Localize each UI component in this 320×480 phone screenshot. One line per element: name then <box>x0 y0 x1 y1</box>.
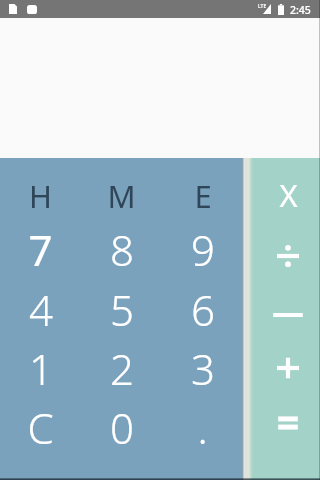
staticText: 7 <box>28 221 53 278</box>
staticText: 1 <box>29 340 53 397</box>
button[interactable]: 0 <box>81 398 162 457</box>
button[interactable]: Equals <box>256 395 320 450</box>
staticText: 4 <box>29 281 53 338</box>
button[interactable]: 7 <box>0 220 81 279</box>
staticText: 3 <box>191 340 215 397</box>
staticText: X <box>279 174 298 216</box>
staticText: 0 <box>110 399 134 456</box>
button[interactable]: Multiply <box>256 167 320 222</box>
button[interactable]: 2 <box>81 339 162 398</box>
staticText: 2 <box>110 340 134 397</box>
button[interactable]: 9 <box>162 220 243 279</box>
button[interactable]: E <box>162 166 243 225</box>
button[interactable]: Add <box>256 340 320 395</box>
staticText: 5 <box>110 281 134 338</box>
button[interactable]: M <box>81 166 162 225</box>
button[interactable]: 5 <box>81 280 162 339</box>
staticText: H <box>29 175 52 217</box>
button[interactable]: H <box>0 166 81 225</box>
button[interactable]: 6 <box>162 280 243 339</box>
staticText: 6 <box>191 281 215 338</box>
staticText: 8 <box>110 221 134 278</box>
button[interactable]: 1 <box>0 339 81 398</box>
staticText: . <box>197 399 208 456</box>
staticText: E <box>194 175 212 217</box>
button[interactable]: 4 <box>0 280 81 339</box>
button[interactable]: Subtract <box>256 287 320 342</box>
staticText: 9 <box>191 221 215 278</box>
button[interactable]: C <box>0 398 81 457</box>
staticText: M <box>107 175 136 217</box>
staticText: 2:45 <box>290 3 311 17</box>
button[interactable]: 8 <box>81 220 162 279</box>
staticText: LTE <box>258 3 267 10</box>
button[interactable]: 3 <box>162 339 243 398</box>
button[interactable]: . <box>162 398 243 457</box>
staticText: C <box>27 399 54 456</box>
button[interactable]: Divide <box>256 228 320 283</box>
